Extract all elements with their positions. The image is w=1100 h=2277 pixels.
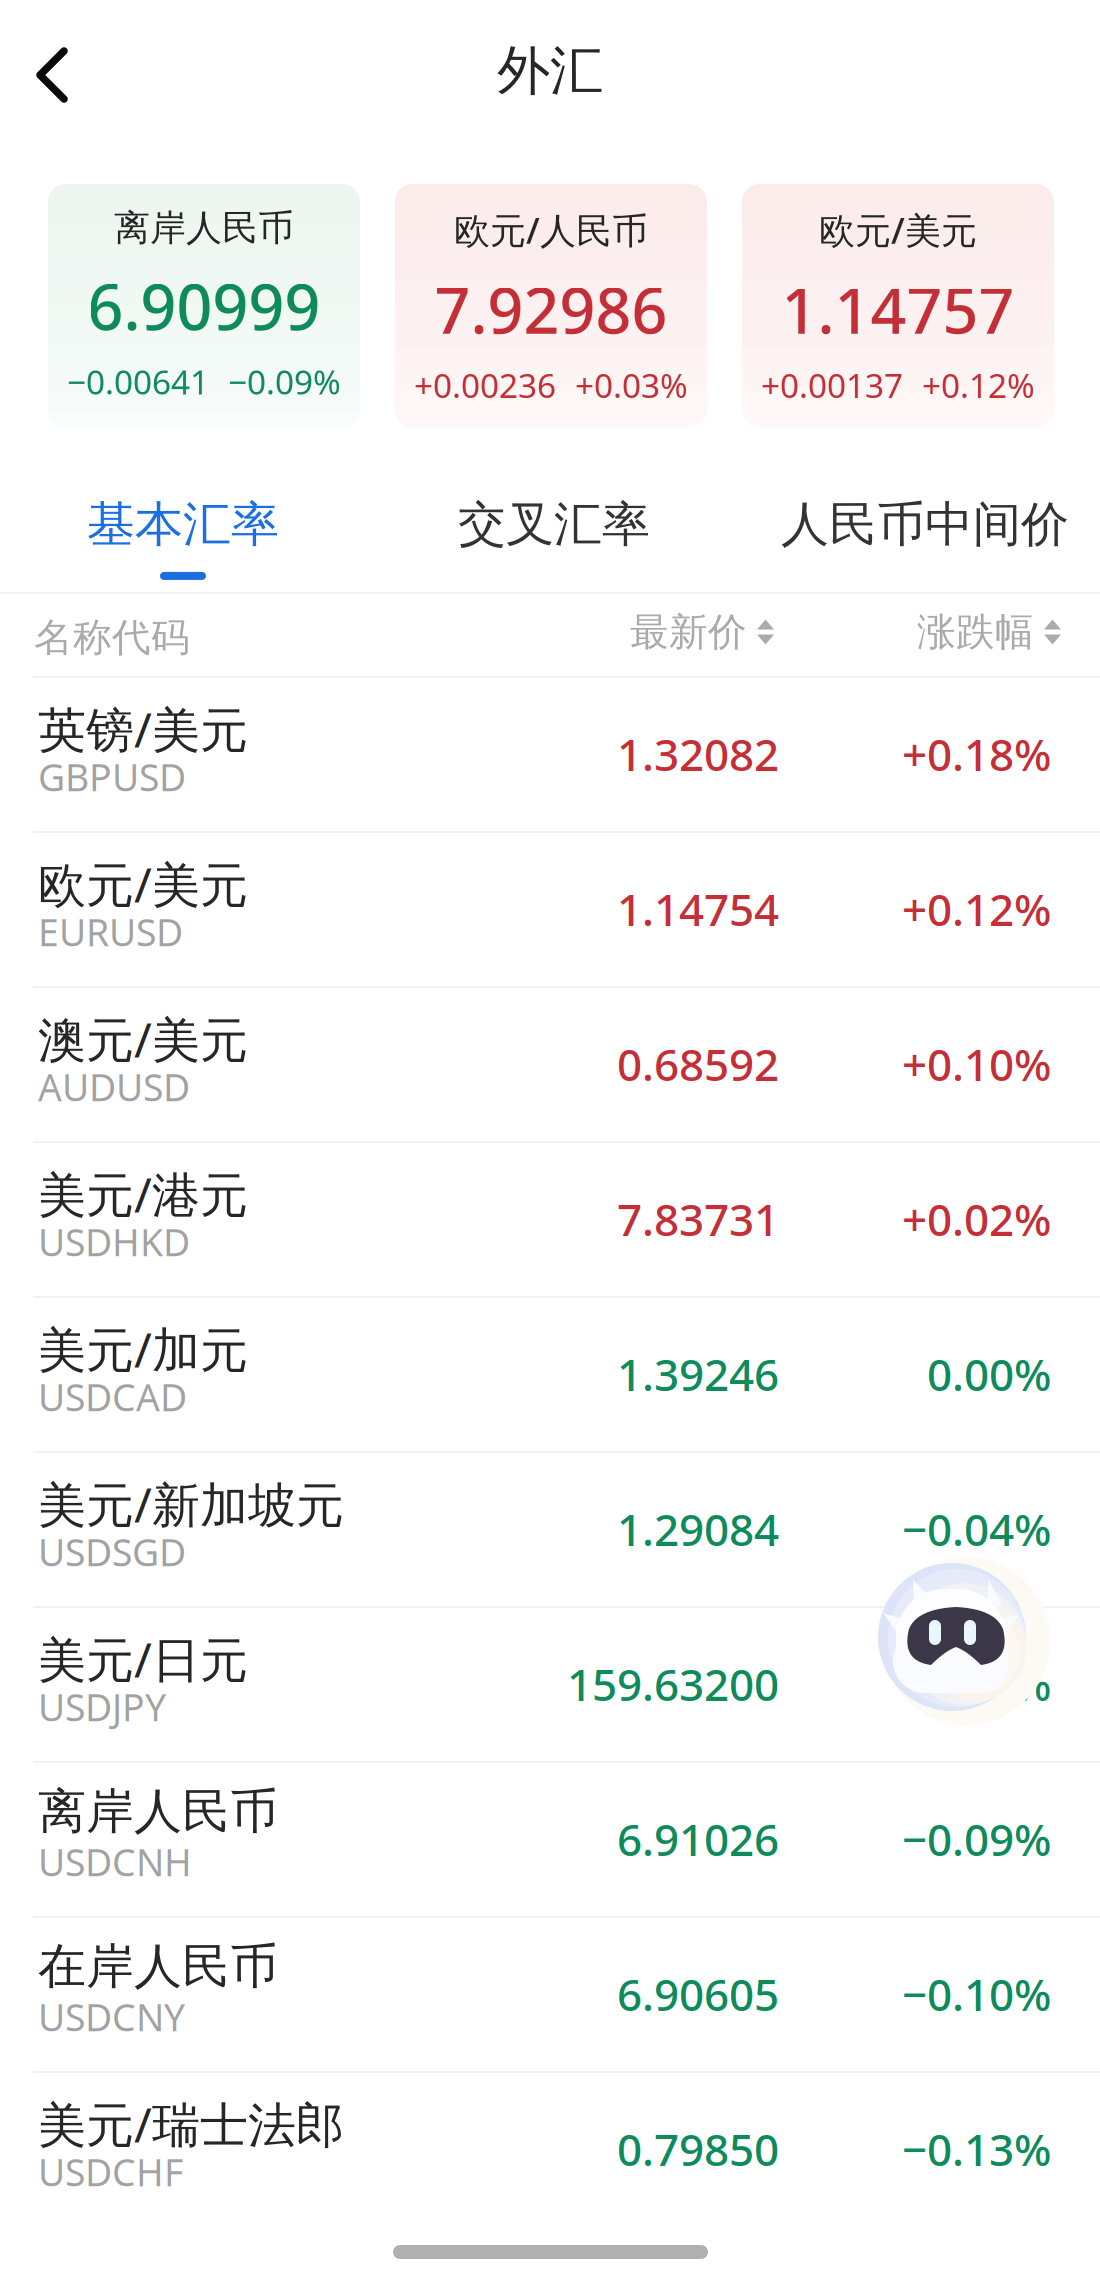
- staticText: +0.12%: [902, 880, 1051, 938]
- staticText: −0.10%: [902, 1965, 1051, 2023]
- staticText: 美元/港元: [38, 1162, 248, 1226]
- staticText: 美元/日元: [38, 1627, 248, 1691]
- staticText: 1.29084: [617, 1500, 779, 1558]
- button[interactable]: 美元/瑞士法郎: [0, 2071, 1100, 2226]
- button[interactable]: 美元/新加坡元: [0, 1451, 1100, 1606]
- staticText: 0.79850: [617, 2120, 779, 2178]
- staticText: GBPUSD: [38, 752, 186, 802]
- button[interactable]: 交叉汇率: [371, 495, 737, 615]
- staticText: 欧元/人民币: [454, 206, 648, 254]
- staticText: 1.14757: [781, 268, 1014, 351]
- button[interactable]: AI assistant: [888, 1573, 1036, 1721]
- staticText: 1.14754: [617, 880, 779, 938]
- staticText: +0.18%: [902, 725, 1051, 783]
- staticText: 美元/瑞士法郎: [38, 2092, 344, 2156]
- button[interactable]: 人民币中间价: [742, 495, 1100, 615]
- staticText: 6.90605: [617, 1965, 779, 2023]
- staticText: 欧元/美元: [819, 206, 977, 254]
- staticText: 离岸人民币: [38, 1782, 278, 1841]
- staticText: −0.04%: [902, 1500, 1051, 1558]
- button[interactable]: 英镑/美元: [0, 676, 1100, 831]
- button[interactable]: 美元/加元: [0, 1296, 1100, 1451]
- staticText: −0.09%: [902, 1810, 1051, 1868]
- staticText: 离岸人民币: [114, 206, 294, 250]
- staticText: 外汇: [497, 38, 603, 104]
- staticText: 英镑/美元: [38, 697, 248, 761]
- staticText: 名称代码: [34, 614, 190, 661]
- staticText: USDCNY: [38, 1992, 185, 2042]
- staticText: +0.12%: [922, 363, 1035, 407]
- staticText: 涨跌幅: [917, 608, 1034, 656]
- staticText: +0.00137: [761, 363, 903, 407]
- staticText: USDSGD: [38, 1527, 186, 1577]
- staticText: 基本汇率: [87, 495, 279, 554]
- staticText: −0.02%: [902, 1655, 1051, 1713]
- button[interactable]: 欧元/美元: [0, 831, 1100, 986]
- staticText: 欧元/美元: [38, 852, 248, 916]
- staticText: +0.10%: [902, 1035, 1051, 1093]
- button[interactable]: 在岸人民币: [0, 1916, 1100, 2071]
- button[interactable]: 欧元/人民币: [395, 184, 707, 428]
- staticText: 159.63200: [567, 1655, 779, 1713]
- staticText: 6.91026: [617, 1810, 779, 1868]
- staticText: 在岸人民币: [38, 1937, 278, 1996]
- staticText: 最新价: [630, 608, 747, 656]
- staticText: USDCNH: [38, 1837, 192, 1887]
- staticText: −0.09%: [228, 359, 341, 404]
- staticText: 1.32082: [617, 725, 779, 783]
- staticText: EURUSD: [38, 907, 183, 957]
- staticText: −0.13%: [902, 2120, 1051, 2178]
- staticText: 0.00%: [927, 1345, 1051, 1403]
- button[interactable]: 美元/日元: [0, 1606, 1100, 1761]
- button[interactable]: Back: [0, 23, 107, 127]
- staticText: 6.90999: [87, 264, 320, 347]
- staticText: AUDUSD: [38, 1062, 190, 1112]
- staticText: 7.92986: [434, 268, 667, 351]
- staticText: +0.00236: [414, 363, 556, 407]
- button[interactable]: 澳元/美元: [0, 986, 1100, 1141]
- staticText: 美元/加元: [38, 1317, 248, 1381]
- staticText: 7.83731: [617, 1190, 779, 1248]
- staticText: −0.00641: [67, 359, 209, 404]
- button[interactable]: 离岸人民币: [48, 184, 360, 428]
- button[interactable]: 欧元/美元: [742, 184, 1054, 428]
- staticText: USDHKD: [38, 1217, 190, 1267]
- staticText: 澳元/美元: [38, 1007, 248, 1071]
- staticText: 美元/新加坡元: [38, 1472, 344, 1536]
- staticText: +0.03%: [575, 363, 688, 407]
- staticText: +0.02%: [902, 1190, 1051, 1248]
- staticText: USDCAD: [38, 1372, 187, 1422]
- button[interactable]: 基本汇率: [0, 495, 366, 615]
- button[interactable]: 离岸人民币: [0, 1761, 1100, 1916]
- staticText: USDCHF: [38, 2147, 183, 2197]
- staticText: 1.39246: [617, 1345, 779, 1403]
- button[interactable]: 美元/港元: [0, 1141, 1100, 1296]
- staticText: 交叉汇率: [458, 495, 650, 554]
- staticText: 人民币中间价: [781, 495, 1069, 554]
- staticText: 0.68592: [617, 1035, 779, 1093]
- staticText: USDJPY: [38, 1682, 166, 1732]
